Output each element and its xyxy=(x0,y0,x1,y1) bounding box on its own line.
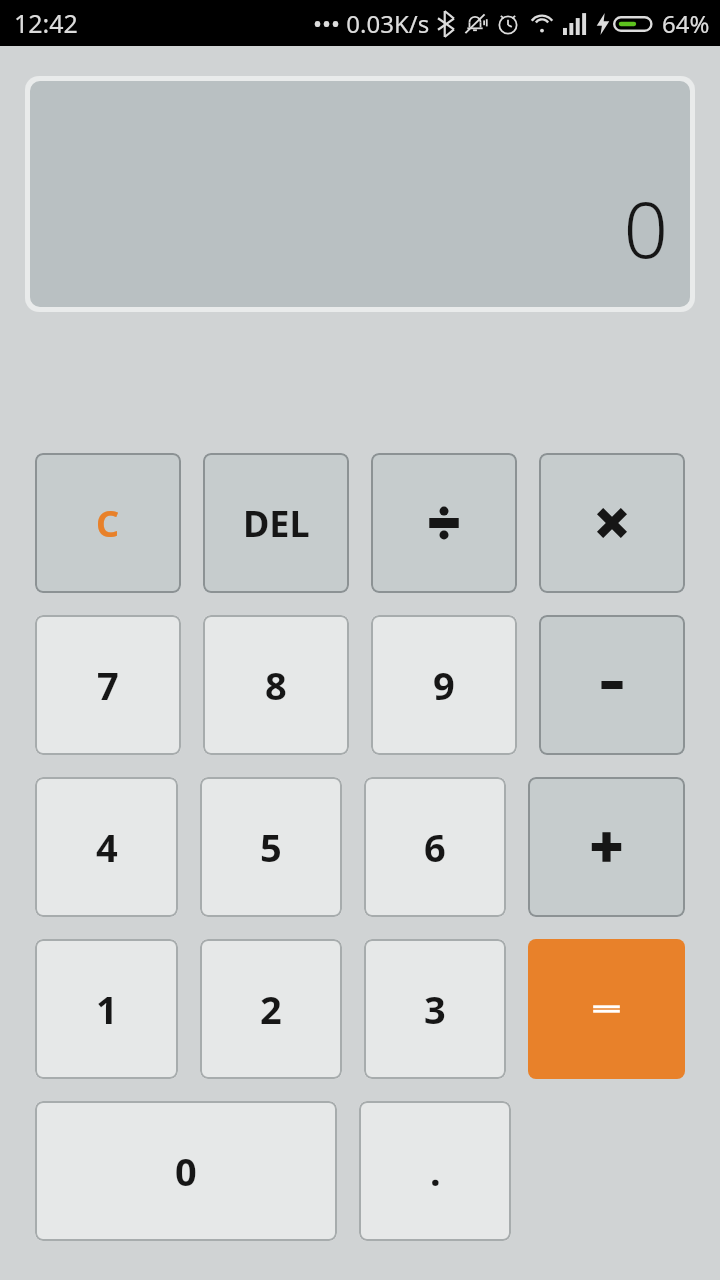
staticText: 64% xyxy=(662,7,710,40)
button[interactable]: Minus xyxy=(539,615,685,755)
staticText: 5 xyxy=(260,821,282,873)
button[interactable]: Multiply xyxy=(539,453,685,593)
staticText: 8 xyxy=(265,659,287,711)
button[interactable]: 1 xyxy=(35,939,178,1079)
button[interactable]: 0 xyxy=(35,1101,337,1241)
staticText: 6 xyxy=(424,821,446,873)
staticText: 3 xyxy=(424,983,446,1035)
button[interactable]: DEL xyxy=(203,453,349,593)
button[interactable]: 5 xyxy=(200,777,342,917)
staticText: C xyxy=(96,499,120,548)
staticText: DEL xyxy=(243,499,310,548)
staticText: 0 xyxy=(623,175,668,281)
button[interactable]: 7 xyxy=(35,615,181,755)
staticText: 7 xyxy=(97,659,119,711)
button[interactable]: 4 xyxy=(35,777,178,917)
button[interactable]: 6 xyxy=(364,777,506,917)
staticText: . xyxy=(430,1145,441,1197)
button[interactable]: 8 xyxy=(203,615,349,755)
button[interactable]: Plus xyxy=(528,777,685,917)
staticText: 4 xyxy=(96,821,118,873)
button[interactable]: C xyxy=(35,453,181,593)
button[interactable]: Divide xyxy=(371,453,517,593)
button[interactable]: . xyxy=(359,1101,511,1241)
staticText: 0 xyxy=(175,1145,197,1197)
button[interactable]: 3 xyxy=(364,939,506,1079)
other: Equals xyxy=(528,939,685,1079)
staticText: 1 xyxy=(96,983,118,1035)
button[interactable]: Equals xyxy=(528,939,685,1079)
staticText: ••• 0.03K/s xyxy=(313,7,430,40)
staticText: 12:42 xyxy=(14,6,78,40)
staticText: 9 xyxy=(433,659,455,711)
button[interactable]: 2 xyxy=(200,939,342,1079)
staticText: 2 xyxy=(260,983,282,1035)
button[interactable]: 9 xyxy=(371,615,517,755)
